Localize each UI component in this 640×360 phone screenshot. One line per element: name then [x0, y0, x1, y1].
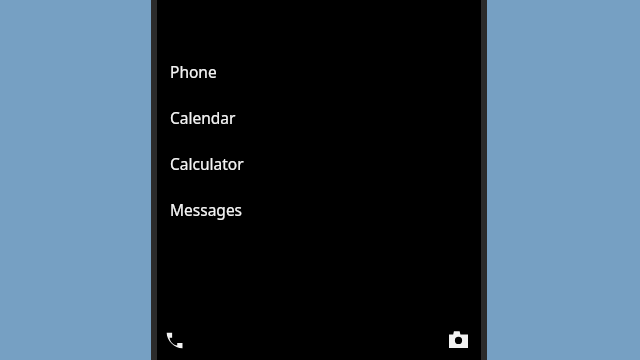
staticText: Calculator	[170, 153, 244, 174]
staticText: Phone	[170, 61, 217, 82]
button[interactable]: Calendar	[157, 101, 481, 133]
button[interactable]: Camera	[444, 325, 472, 353]
button[interactable]: Phone dialer	[160, 326, 188, 354]
button[interactable]: Phone	[157, 55, 481, 87]
button[interactable]: Calculator	[157, 147, 481, 179]
button[interactable]: Messages	[157, 193, 481, 225]
staticText: Messages	[170, 199, 243, 220]
staticText: Calendar	[170, 107, 236, 128]
